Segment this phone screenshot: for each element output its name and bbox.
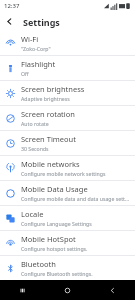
staticText: Bluetooth [21,259,56,269]
button[interactable]: Home [45,280,90,300]
button[interactable]: Screen brightness [0,81,135,106]
button[interactable]: Mobile HotSpot [0,231,135,256]
staticText: 30 Seconds [21,145,49,152]
staticText: Settings [23,16,60,28]
staticText: Configure mobile network settings [21,170,106,177]
staticText: Configure Bluetooth settings. [21,270,93,277]
staticText: Wi-Fi [21,34,39,44]
staticText: Configure Language Settings [21,220,92,227]
button[interactable]: Back [0,12,19,31]
staticText: Off [21,70,29,77]
button[interactable]: Mobile networks [0,156,135,181]
staticText: Mobile networks [21,159,80,169]
staticText: Configure mobile data and data usage set… [21,195,130,202]
staticText: Adaptive brightness [21,95,70,102]
staticText: Flashlight [21,59,56,69]
staticText: Locale [21,209,44,219]
staticText: Screen rotation [21,109,75,119]
button[interactable]: Flashlight [0,56,135,81]
staticText: Auto rotate [21,120,49,127]
button[interactable]: Back [90,280,135,300]
staticText: Configure hotspot settings. [21,245,88,252]
staticText: Screen Timeout [21,134,76,144]
staticText: "Zoko-Corp" [21,45,51,52]
button[interactable]: Wi-Fi [0,31,135,56]
button[interactable]: Recents [0,280,45,300]
staticText: Mobile Data Usage [21,184,88,194]
button[interactable]: Bluetooth [0,256,135,280]
staticText: Screen brightness [21,84,85,94]
button[interactable]: Mobile Data Usage [0,181,135,206]
button[interactable]: Locale [0,206,135,231]
button[interactable]: Screen Timeout [0,131,135,156]
staticText: 12:37 [4,2,20,10]
button[interactable]: Screen rotation [0,106,135,131]
staticText: Mobile HotSpot [21,234,76,244]
